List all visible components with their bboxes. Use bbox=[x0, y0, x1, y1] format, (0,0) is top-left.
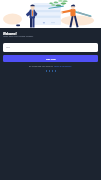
button[interactable]: Terms & Conditions bbox=[54, 65, 72, 68]
staticText: Login with your mobile number bbox=[3, 35, 34, 38]
button[interactable]: GET OTP bbox=[3, 55, 98, 62]
staticText: Welcome! bbox=[3, 32, 17, 36]
staticText: +91 bbox=[6, 46, 10, 49]
staticText: By continuing you agree to bbox=[29, 65, 54, 68]
staticText: GET OTP bbox=[46, 57, 56, 60]
button[interactable]: +91 bbox=[3, 43, 98, 52]
